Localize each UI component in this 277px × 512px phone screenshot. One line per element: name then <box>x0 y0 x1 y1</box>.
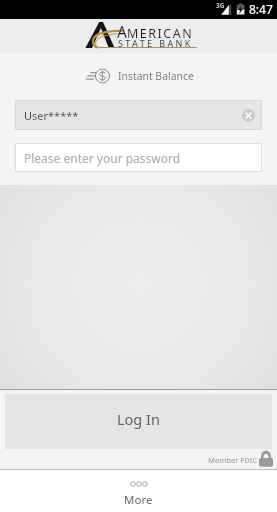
staticText: More <box>124 492 153 508</box>
staticText: Please enter your password <box>24 150 181 166</box>
staticText: Member FDIC <box>208 455 258 465</box>
button[interactable]: User***** <box>15 100 262 130</box>
button[interactable]: Please enter your password <box>15 143 262 172</box>
button[interactable]: Instant Balance <box>86 67 194 85</box>
staticText: User***** <box>24 108 79 123</box>
button[interactable]: Clear username <box>242 109 255 122</box>
staticText: STATE BANK <box>118 37 193 49</box>
staticText: 8:47 <box>249 1 273 17</box>
staticText: MERICAN <box>127 25 194 42</box>
button[interactable]: More <box>0 470 277 512</box>
button[interactable]: Log In <box>5 394 272 449</box>
staticText: Instant Balance <box>118 69 194 83</box>
staticText: Log In <box>117 409 160 429</box>
staticText: 3G <box>216 1 225 10</box>
staticText: A <box>117 21 127 42</box>
